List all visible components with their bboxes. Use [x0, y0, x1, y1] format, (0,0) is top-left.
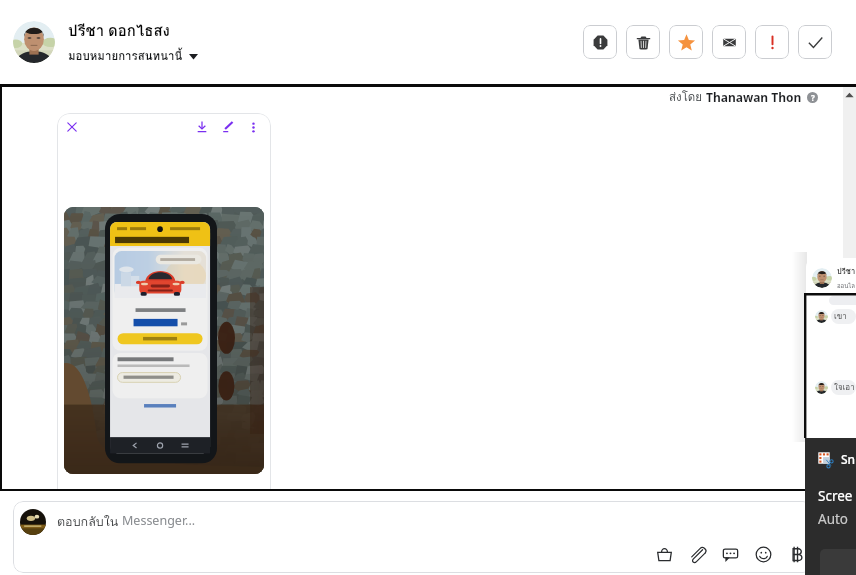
button[interactable]: Scroll up	[843, 87, 856, 103]
button[interactable]: Emoji	[751, 542, 775, 566]
button[interactable]: Follow up	[755, 25, 789, 59]
staticText: ใจเอาเท่	[834, 381, 856, 394]
button[interactable]: More options	[246, 120, 260, 134]
button[interactable]: Delete	[626, 25, 660, 59]
button[interactable]: Close	[64, 119, 80, 135]
staticText: เขาไรส์	[834, 310, 856, 323]
staticText: ตอบกลับใน	[57, 512, 122, 532]
button[interactable]: มอบหมายการสนทนานี้	[68, 47, 198, 65]
button[interactable]: Saved replies	[718, 542, 742, 566]
staticText: Autom	[818, 510, 856, 528]
staticText: ปรีชา ดอกไธสง	[68, 19, 170, 43]
button[interactable]: Close	[57, 113, 271, 489]
button[interactable]: Star	[669, 25, 703, 59]
staticText: มอบหมายการสนทนานี้	[68, 47, 183, 65]
button[interactable]: Mark as spam	[583, 25, 617, 59]
button[interactable]: Mark as done	[798, 25, 832, 59]
button[interactable]: Price	[784, 542, 808, 566]
staticText: Messenger...	[122, 512, 196, 529]
staticText: ออนไลน์	[837, 281, 856, 291]
button[interactable]: ปรีชา ด	[806, 258, 856, 298]
button[interactable]: Sn	[805, 438, 856, 575]
staticText: Sn	[841, 451, 856, 467]
button[interactable]: Edit	[220, 119, 236, 135]
button[interactable]: Help	[807, 92, 818, 103]
staticText: Thanawan Thon	[706, 89, 802, 105]
button[interactable]: Attach file	[685, 542, 709, 566]
button[interactable]: Marketplace	[652, 542, 676, 566]
button[interactable]: Mark as unread	[712, 25, 746, 59]
staticText: ปรีชา ด	[837, 265, 856, 277]
staticText: Screen	[818, 487, 856, 505]
button[interactable]: Download	[194, 119, 210, 135]
button[interactable]: เขาไรส์	[804, 293, 856, 438]
button[interactable]: ตอบกลับใน	[13, 501, 813, 573]
button[interactable]: Profile photo	[13, 21, 55, 63]
staticText: ?	[811, 92, 815, 103]
staticText: ส่งโดย	[669, 88, 706, 106]
